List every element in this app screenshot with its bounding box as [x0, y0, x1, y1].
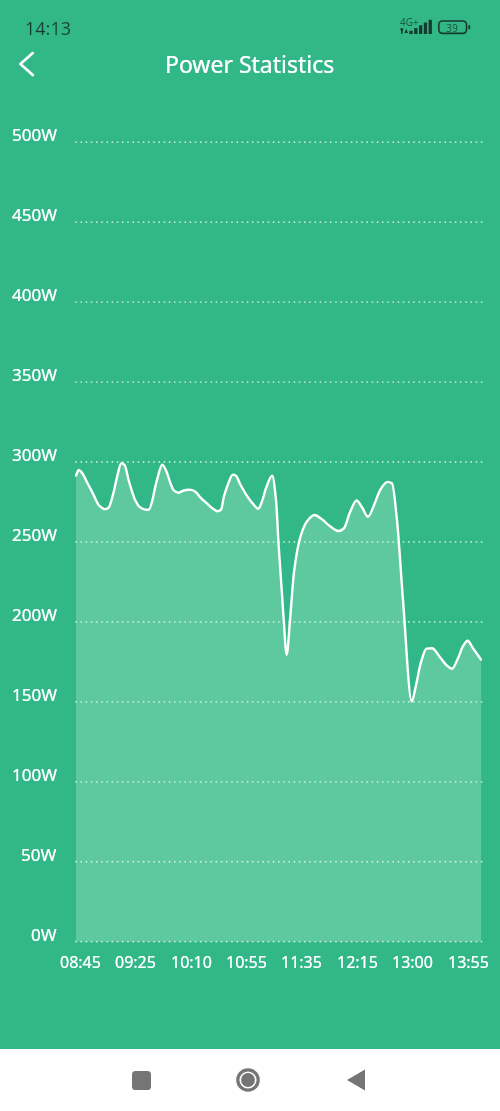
staticText: 10:10: [171, 951, 212, 973]
staticText: 350W: [12, 363, 57, 386]
staticText: 450W: [12, 203, 57, 226]
staticText: 150W: [12, 683, 57, 706]
button[interactable]: Back: [321, 1049, 391, 1111]
button[interactable]: Home: [213, 1049, 283, 1111]
staticText: 09:25: [115, 951, 156, 973]
staticText: 100W: [12, 763, 57, 786]
staticText: 10:55: [226, 951, 267, 973]
staticText: 13:55: [448, 951, 489, 973]
staticText: 14:13: [25, 16, 72, 41]
staticText: 400W: [12, 283, 57, 306]
staticText: 0W: [31, 923, 57, 946]
staticText: 11:35: [281, 951, 322, 973]
staticText: 12:15: [337, 951, 378, 973]
staticText: 08:45: [60, 951, 101, 973]
staticText: 39: [446, 21, 459, 35]
staticText: 4G+: [400, 15, 419, 29]
staticText: 13:00: [392, 951, 433, 973]
staticText: 50W: [21, 843, 57, 866]
staticText: Power Statistics: [165, 48, 335, 79]
staticText: 200W: [12, 603, 57, 626]
button[interactable]: Back: [2, 40, 50, 84]
staticText: 300W: [12, 443, 57, 466]
staticText: 500W: [12, 123, 57, 146]
button[interactable]: Recents: [106, 1049, 176, 1111]
staticText: 250W: [12, 523, 57, 546]
